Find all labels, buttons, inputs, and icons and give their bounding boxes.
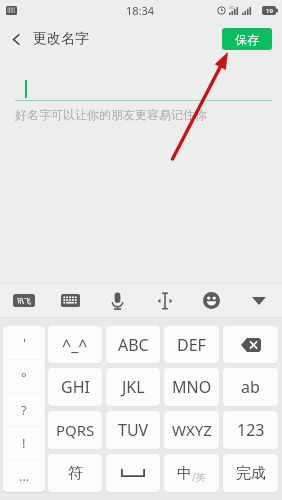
button[interactable]: ! [3, 427, 45, 459]
staticText: ! [22, 434, 26, 452]
staticText: 18:34 [126, 3, 155, 18]
button[interactable]: WXYZ [164, 411, 219, 449]
button[interactable]: 符 [48, 454, 102, 492]
button[interactable]: JKL [106, 368, 160, 406]
button[interactable]: Hide keyboard [235, 284, 282, 317]
button[interactable]: ^_^ [48, 326, 102, 363]
button[interactable]: 完成 [223, 454, 278, 492]
button[interactable]: TUV [106, 411, 160, 449]
staticText: 19 [266, 7, 273, 15]
staticText: 中 [177, 464, 192, 483]
staticText: 更改名字 [33, 30, 89, 48]
button[interactable]: Delete [223, 326, 278, 363]
button[interactable]: ABC [106, 326, 160, 363]
staticText: GHI [61, 376, 90, 398]
button[interactable]: Input method [0, 284, 47, 317]
button[interactable]: Move cursor [141, 284, 188, 317]
staticText: 完成 [236, 464, 266, 483]
button[interactable]: … [3, 460, 45, 492]
staticText: 符 [68, 464, 83, 483]
button[interactable]: Emoji [188, 284, 235, 317]
staticText: TUV [118, 419, 149, 441]
staticText: ab [241, 376, 260, 398]
staticText: ° [21, 368, 27, 386]
staticText: ^_^ [62, 334, 88, 356]
button[interactable]: GHI [48, 368, 102, 406]
staticText: 讯飞 [17, 296, 31, 305]
staticText: ABC [118, 334, 149, 356]
staticText: 保存 [235, 32, 259, 47]
button[interactable]: ' [3, 326, 45, 359]
button[interactable]: 123 [223, 411, 278, 449]
button[interactable]: DEF [164, 326, 219, 363]
staticText: MNO [172, 376, 212, 398]
button[interactable]: 保存 [222, 28, 272, 50]
button[interactable]: 中 [164, 454, 219, 492]
staticText: 123 [237, 419, 265, 441]
button[interactable]: ab [223, 368, 278, 406]
staticText: 4G [229, 5, 235, 10]
staticText: JKL [122, 376, 145, 398]
button[interactable]: Back [0, 20, 32, 58]
staticText: 好名字可以让你的朋友更容易记住你 [15, 107, 207, 122]
button[interactable]: ? [3, 394, 45, 426]
staticText: … [19, 467, 30, 485]
staticText: ' [23, 334, 26, 352]
staticText: DEF [177, 334, 206, 356]
button[interactable]: Voice input [94, 284, 141, 317]
button[interactable]: ° [3, 360, 45, 393]
staticText: PQRS [56, 420, 95, 440]
button[interactable]: PQRS [48, 411, 102, 449]
button[interactable]: Space [106, 454, 160, 492]
staticText: ? [21, 401, 27, 419]
staticText: WXYZ [172, 420, 212, 440]
button[interactable]: MNO [164, 368, 219, 406]
button[interactable]: Keyboard layout [47, 284, 94, 317]
staticText: /英 [192, 470, 206, 484]
